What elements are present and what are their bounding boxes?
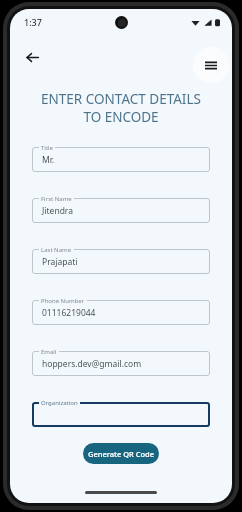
button[interactable]: Email [32, 347, 210, 376]
staticText: Mr. [42, 154, 55, 166]
staticText: Phone Number [41, 297, 85, 305]
staticText: Prajapati [42, 256, 78, 268]
staticText: ENTER CONTACT DETAILS TO ENCODE [36, 90, 206, 126]
button[interactable]: Last Name [32, 245, 210, 274]
staticText: Generate QR Code [88, 449, 155, 459]
staticText: Jitendra [42, 205, 73, 217]
staticText: Title [41, 144, 53, 152]
button[interactable]: Generate QR Code [83, 443, 159, 464]
button[interactable]: First Name [32, 194, 210, 223]
button[interactable]: Title [32, 143, 210, 172]
staticText: Email [41, 348, 57, 356]
staticText: 01116219044 [42, 307, 96, 319]
staticText: Last Name [41, 246, 72, 254]
button[interactable]: Menu [193, 47, 229, 83]
staticText: hoppers.dev@gmail.com [42, 358, 142, 370]
button[interactable]: Organization [32, 398, 210, 427]
button[interactable]: Back [19, 44, 45, 70]
staticText: First Name [41, 195, 72, 203]
staticText: 1:37 [24, 16, 42, 28]
button[interactable]: Phone Number [32, 296, 210, 325]
staticText: Organization [41, 399, 78, 407]
